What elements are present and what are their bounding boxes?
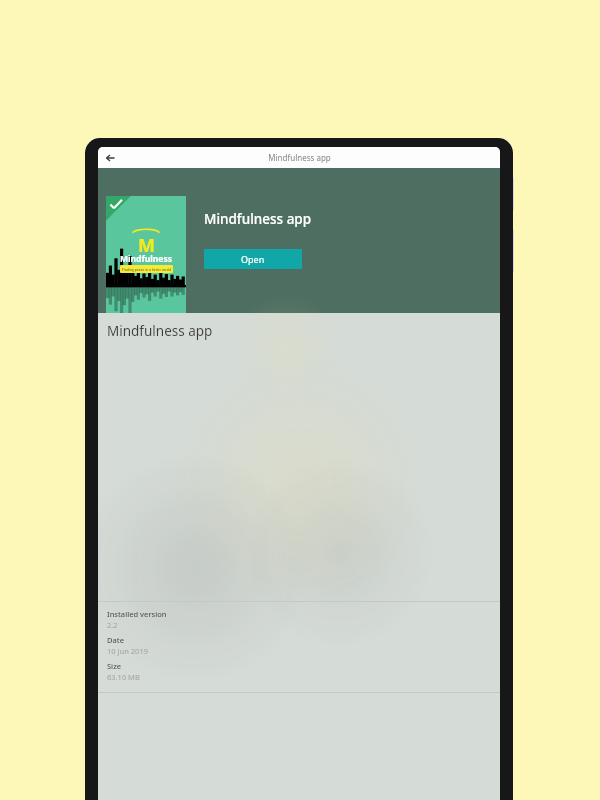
staticText: 63.10 MB [107, 672, 140, 682]
staticText: M [138, 233, 155, 258]
staticText: Installed version [107, 609, 167, 619]
staticText: Open [241, 253, 265, 265]
staticText: Size [107, 661, 122, 671]
button[interactable]: Back [102, 150, 118, 166]
button[interactable]: Open [204, 249, 302, 269]
staticText: 10 Jun 2019 [107, 646, 148, 656]
staticText: Date [107, 635, 124, 645]
staticText: Finding peace in a hectic world [122, 267, 172, 272]
staticText: Mindfulness app [107, 322, 213, 340]
staticText: Mindfulness app [268, 152, 331, 163]
staticText: Mindfulness [120, 253, 172, 265]
staticText: Mindfulness app [204, 210, 312, 228]
staticText: 2.2 [107, 620, 118, 630]
